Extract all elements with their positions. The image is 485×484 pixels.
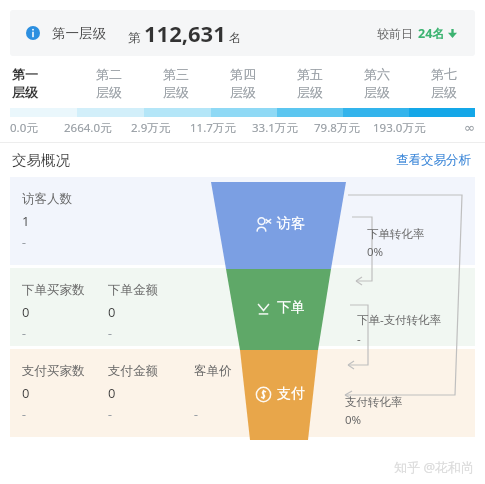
staticText: 客单价: [194, 363, 232, 379]
staticText: 支付买家数: [22, 363, 85, 379]
button[interactable]: 第五: [276, 64, 343, 102]
staticText: 33.1万元: [252, 120, 298, 136]
button[interactable]: 下单: [255, 299, 305, 317]
staticText: 层级: [364, 84, 390, 100]
staticText: 下单-支付转化率: [357, 312, 442, 328]
button[interactable]: 第四: [209, 64, 276, 102]
staticText: -: [22, 325, 26, 341]
button[interactable]: 访客: [255, 215, 305, 233]
other: 支付: [255, 386, 272, 403]
staticText: 1: [22, 212, 30, 230]
staticText: -: [194, 406, 198, 422]
other: Info: [26, 26, 40, 40]
staticText: 2664.0元: [64, 120, 112, 136]
staticText: 访客人数: [22, 191, 72, 207]
staticText: 第三: [163, 66, 189, 82]
button[interactable]: 访客人数: [10, 177, 475, 265]
button[interactable]: 第三: [142, 64, 209, 102]
staticText: -: [22, 406, 26, 422]
other: 下单: [255, 300, 272, 317]
staticText: 0%: [367, 244, 384, 260]
button[interactable]: 下单买家数: [10, 268, 475, 346]
staticText: 第一层级: [52, 25, 106, 42]
staticText: 第一: [12, 66, 38, 82]
staticText: -: [357, 331, 361, 347]
staticText: ∞: [464, 120, 475, 135]
staticText: 79.8万元: [314, 120, 360, 136]
staticText: 支付转化率: [345, 395, 403, 409]
staticText: 0.0元: [10, 120, 38, 136]
staticText: 下单金额: [108, 282, 158, 298]
staticText: 0: [22, 303, 30, 321]
button[interactable]: 第六: [343, 64, 410, 102]
staticText: 2.9万元: [131, 120, 171, 136]
staticText: 第二: [96, 66, 122, 82]
staticText: 下单: [277, 299, 305, 317]
staticText: 知乎 @花和尚: [394, 458, 475, 476]
staticText: 第五: [297, 66, 323, 82]
staticText: -: [108, 406, 112, 422]
staticText: 11.7万元: [190, 120, 236, 136]
staticText: 层级: [431, 84, 457, 100]
staticText: 较前日: [377, 26, 413, 41]
staticText: 第: [128, 30, 141, 46]
staticText: 支付: [277, 385, 305, 403]
staticText: 0%: [345, 412, 362, 428]
staticText: 112,631: [144, 18, 226, 48]
button[interactable]: Info: [10, 10, 475, 56]
button[interactable]: 查看交易分析: [394, 150, 473, 170]
staticText: 支付金额: [108, 363, 158, 379]
other: 访客: [255, 216, 272, 233]
staticText: 第四: [230, 66, 256, 82]
staticText: 查看交易分析: [396, 152, 471, 168]
staticText: 层级: [230, 84, 256, 100]
staticText: 访客: [277, 215, 305, 233]
staticText: 下单转化率: [367, 227, 425, 241]
staticText: 第七: [431, 66, 457, 82]
button[interactable]: 第一: [8, 64, 75, 102]
staticText: 193.0万元: [373, 120, 426, 136]
staticText: 第六: [364, 66, 390, 82]
staticText: 层级: [12, 84, 38, 100]
staticText: 0: [22, 384, 30, 402]
staticText: 下单买家数: [22, 282, 85, 298]
staticText: -: [108, 325, 112, 341]
staticText: 层级: [297, 84, 323, 100]
button[interactable]: 支付买家数: [10, 349, 475, 437]
staticText: 层级: [163, 84, 189, 100]
button[interactable]: 第二: [75, 64, 142, 102]
staticText: 24名: [418, 25, 445, 42]
button[interactable]: 第七: [410, 64, 477, 102]
staticText: 名: [229, 30, 242, 46]
staticText: -: [22, 234, 26, 250]
staticText: 交易概况: [12, 151, 70, 169]
button[interactable]: 支付: [255, 385, 305, 403]
staticText: 0: [108, 384, 116, 402]
staticText: 0: [108, 303, 116, 321]
staticText: 层级: [96, 84, 122, 100]
